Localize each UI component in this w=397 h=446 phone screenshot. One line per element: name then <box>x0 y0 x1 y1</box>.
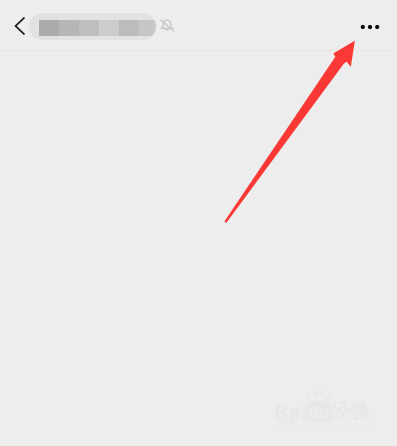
button[interactable]: Contact name, muted <box>29 13 173 40</box>
button[interactable]: Back <box>3 4 37 48</box>
button[interactable]: More <box>348 5 392 49</box>
